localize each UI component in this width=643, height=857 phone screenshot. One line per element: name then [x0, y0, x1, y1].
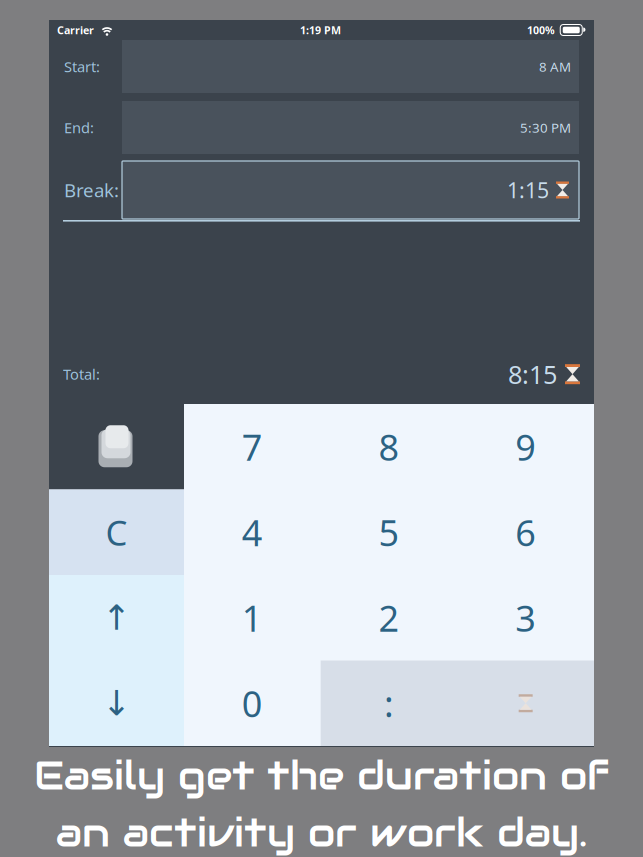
- button[interactable]: 0: [184, 660, 321, 746]
- button[interactable]: End:: [64, 101, 579, 154]
- staticText: :: [384, 679, 394, 727]
- staticText: 8: [378, 423, 399, 471]
- staticText: 6: [515, 508, 536, 556]
- button[interactable]: 4: [184, 489, 321, 575]
- staticText: 5: [378, 508, 399, 556]
- button[interactable]: 2: [321, 575, 457, 660]
- button[interactable]: Paste: [49, 404, 184, 489]
- staticText: ↓: [102, 684, 131, 723]
- staticText: 8:15: [508, 357, 557, 391]
- staticText: 7: [242, 423, 263, 471]
- staticText: Easily get the duration of: [34, 750, 609, 801]
- button[interactable]: 7: [184, 404, 321, 489]
- staticText: Carrier: [57, 23, 94, 37]
- button[interactable]: 1: [184, 575, 321, 660]
- staticText: 3: [515, 594, 536, 642]
- button[interactable]: 5: [321, 489, 457, 575]
- button[interactable]: Start:: [64, 40, 579, 93]
- staticText: 1:15: [507, 176, 549, 204]
- button[interactable]: ↑: [49, 575, 184, 660]
- staticText: 2: [378, 594, 399, 642]
- staticText: 5:30 PM: [520, 119, 571, 136]
- button[interactable]: Break:: [64, 161, 579, 219]
- staticText: 8 AM: [539, 58, 571, 75]
- button[interactable]: Duration: [457, 660, 594, 746]
- staticText: 9: [515, 423, 536, 471]
- staticText: an activity or work day.: [56, 807, 587, 857]
- staticText: 4: [242, 508, 263, 556]
- staticText: 1: [242, 594, 263, 642]
- button[interactable]: ↓: [49, 660, 184, 746]
- staticText: End:: [64, 118, 94, 137]
- staticText: 100%: [527, 23, 555, 37]
- staticText: Total:: [63, 364, 100, 384]
- button[interactable]: 6: [457, 489, 594, 575]
- staticText: 1:19 PM: [300, 23, 341, 37]
- staticText: 0: [242, 679, 263, 727]
- staticText: ↑: [102, 598, 131, 637]
- button[interactable]: 9: [457, 404, 594, 489]
- button[interactable]: :: [321, 660, 457, 746]
- staticText: Break:: [64, 178, 119, 202]
- button[interactable]: 3: [457, 575, 594, 660]
- staticText: Start:: [64, 57, 100, 76]
- staticText: C: [105, 509, 127, 555]
- button[interactable]: 8: [321, 404, 457, 489]
- button[interactable]: C: [49, 489, 184, 575]
